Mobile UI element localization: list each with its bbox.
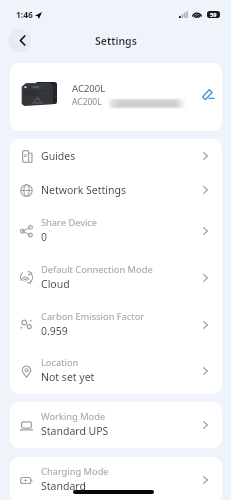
button[interactable]: Carbon Emission Factor (10, 301, 222, 348)
button[interactable]: Working Mode (10, 402, 222, 448)
staticText: AC200L (72, 96, 102, 108)
button[interactable]: Share Device (10, 207, 222, 254)
staticText: Working Mode (41, 410, 106, 423)
staticText: Standard (41, 479, 86, 493)
button[interactable]: Guides (10, 139, 222, 173)
button[interactable]: Back (8, 29, 31, 52)
staticText: Standard UPS (41, 424, 109, 438)
staticText: Settings (95, 34, 137, 48)
staticText: 0 (41, 230, 48, 244)
staticText: AC200L (72, 82, 106, 95)
staticText: 1:46 (16, 9, 33, 21)
staticText: Location (41, 356, 79, 369)
staticText: Cloud (41, 277, 70, 291)
button[interactable]: Edit device name (200, 86, 216, 102)
staticText: Network Settings (41, 183, 126, 197)
button[interactable]: Network Settings (10, 173, 222, 207)
staticText: Default Connection Mode (41, 263, 153, 276)
button[interactable]: AC200L (10, 63, 222, 131)
button[interactable]: Location (10, 348, 222, 394)
staticText: 59 (210, 11, 217, 18)
staticText: Share Device (41, 216, 98, 229)
staticText: Carbon Emission Factor (41, 310, 145, 323)
staticText: 0.959 (41, 324, 68, 338)
staticText: Charging Mode (41, 465, 109, 478)
staticText: Guides (41, 149, 76, 163)
button[interactable]: Charging Mode (10, 457, 222, 500)
button[interactable]: Default Connection Mode (10, 254, 222, 301)
staticText: Not set yet (41, 370, 95, 384)
